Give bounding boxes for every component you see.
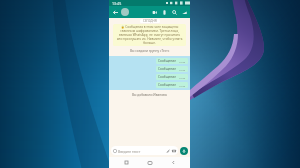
button[interactable]: Сообщение xyxy=(109,73,190,81)
staticText: Введите текст xyxy=(118,149,141,153)
staticText: Вы создали группу «Тест» xyxy=(130,49,170,53)
button[interactable]: Home xyxy=(143,157,157,168)
button[interactable]: Attach xyxy=(165,148,170,153)
staticText: 13:45 xyxy=(179,84,186,87)
staticText: Сообщение xyxy=(158,75,177,79)
button[interactable]: Сообщение xyxy=(109,65,190,73)
staticText: Сообщение xyxy=(158,67,177,71)
staticText: 13:45 xyxy=(179,76,186,79)
button[interactable]: Back xyxy=(166,157,180,168)
button[interactable]: Voice message xyxy=(180,147,188,155)
button[interactable]: Call xyxy=(159,6,169,18)
staticText: Сообщение xyxy=(158,59,177,63)
button[interactable]: Video call xyxy=(149,6,159,18)
button[interactable]: More options xyxy=(179,6,189,18)
button[interactable]: Сообщение xyxy=(109,81,190,89)
staticText: СЕГОДНЯ xyxy=(143,19,157,23)
button[interactable]: Search xyxy=(169,6,179,18)
staticText: 13:45 xyxy=(179,68,186,71)
staticText: 🔒 Сообщения в этом чате защищены сквозны… xyxy=(116,25,183,45)
button[interactable]: Camera xyxy=(171,148,176,153)
staticText: Вы добавили Иванова xyxy=(132,93,167,97)
button[interactable]: Введите текст xyxy=(111,146,178,155)
staticText: Сообщение xyxy=(158,83,177,87)
button[interactable]: Back xyxy=(111,8,119,16)
button[interactable]: Сообщение xyxy=(109,57,190,65)
button[interactable]: СЕГОДНЯ xyxy=(140,19,160,23)
staticText: 13:45 xyxy=(112,1,122,6)
staticText: 13:45 xyxy=(179,60,186,63)
button[interactable]: 🔒 Сообщения в этом чате защищены сквозны… xyxy=(113,24,186,46)
button[interactable]: Recents xyxy=(119,157,133,168)
button[interactable]: Contact avatar xyxy=(121,8,129,16)
